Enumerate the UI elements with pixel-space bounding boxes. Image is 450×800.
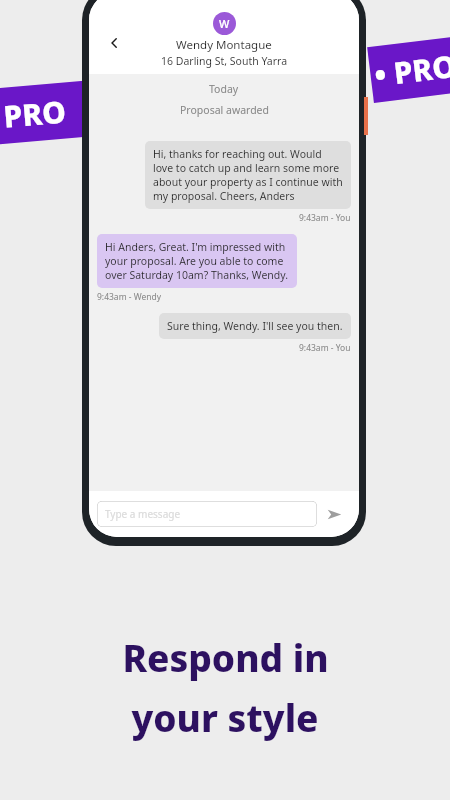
staticText: 16 Darling St, South Yarra xyxy=(161,54,288,68)
staticText: Type a message xyxy=(105,507,181,521)
staticText: 9:43am - You xyxy=(299,212,351,224)
staticText: Wendy Montague xyxy=(176,37,272,53)
button[interactable]: Send xyxy=(317,497,351,531)
staticText: Proposal awarded xyxy=(180,103,269,117)
staticText: • PRO xyxy=(372,45,450,95)
staticText: Hi, thanks for reaching out. Would love … xyxy=(153,147,343,203)
staticText: your style xyxy=(131,692,319,742)
staticText: 9:43am - Wendy xyxy=(97,291,162,303)
staticText: Hi Anders, Great. I'm impressed with you… xyxy=(105,240,289,282)
button[interactable]: Sure thing, Wendy. I'll see you then. xyxy=(159,313,351,339)
staticText: • PRO xyxy=(0,90,68,138)
staticText: 9:43am - You xyxy=(299,342,351,354)
button[interactable]: Hi, thanks for reaching out. Would love … xyxy=(145,141,351,209)
staticText: Today xyxy=(209,82,239,96)
button[interactable]: Back xyxy=(99,28,129,58)
button[interactable]: Type a message xyxy=(97,501,317,527)
button[interactable]: Hi Anders, Great. I'm impressed with you… xyxy=(97,234,297,288)
staticText: W xyxy=(219,16,230,31)
staticText: Sure thing, Wendy. I'll see you then. xyxy=(167,319,343,333)
staticText: Respond in xyxy=(122,632,329,682)
